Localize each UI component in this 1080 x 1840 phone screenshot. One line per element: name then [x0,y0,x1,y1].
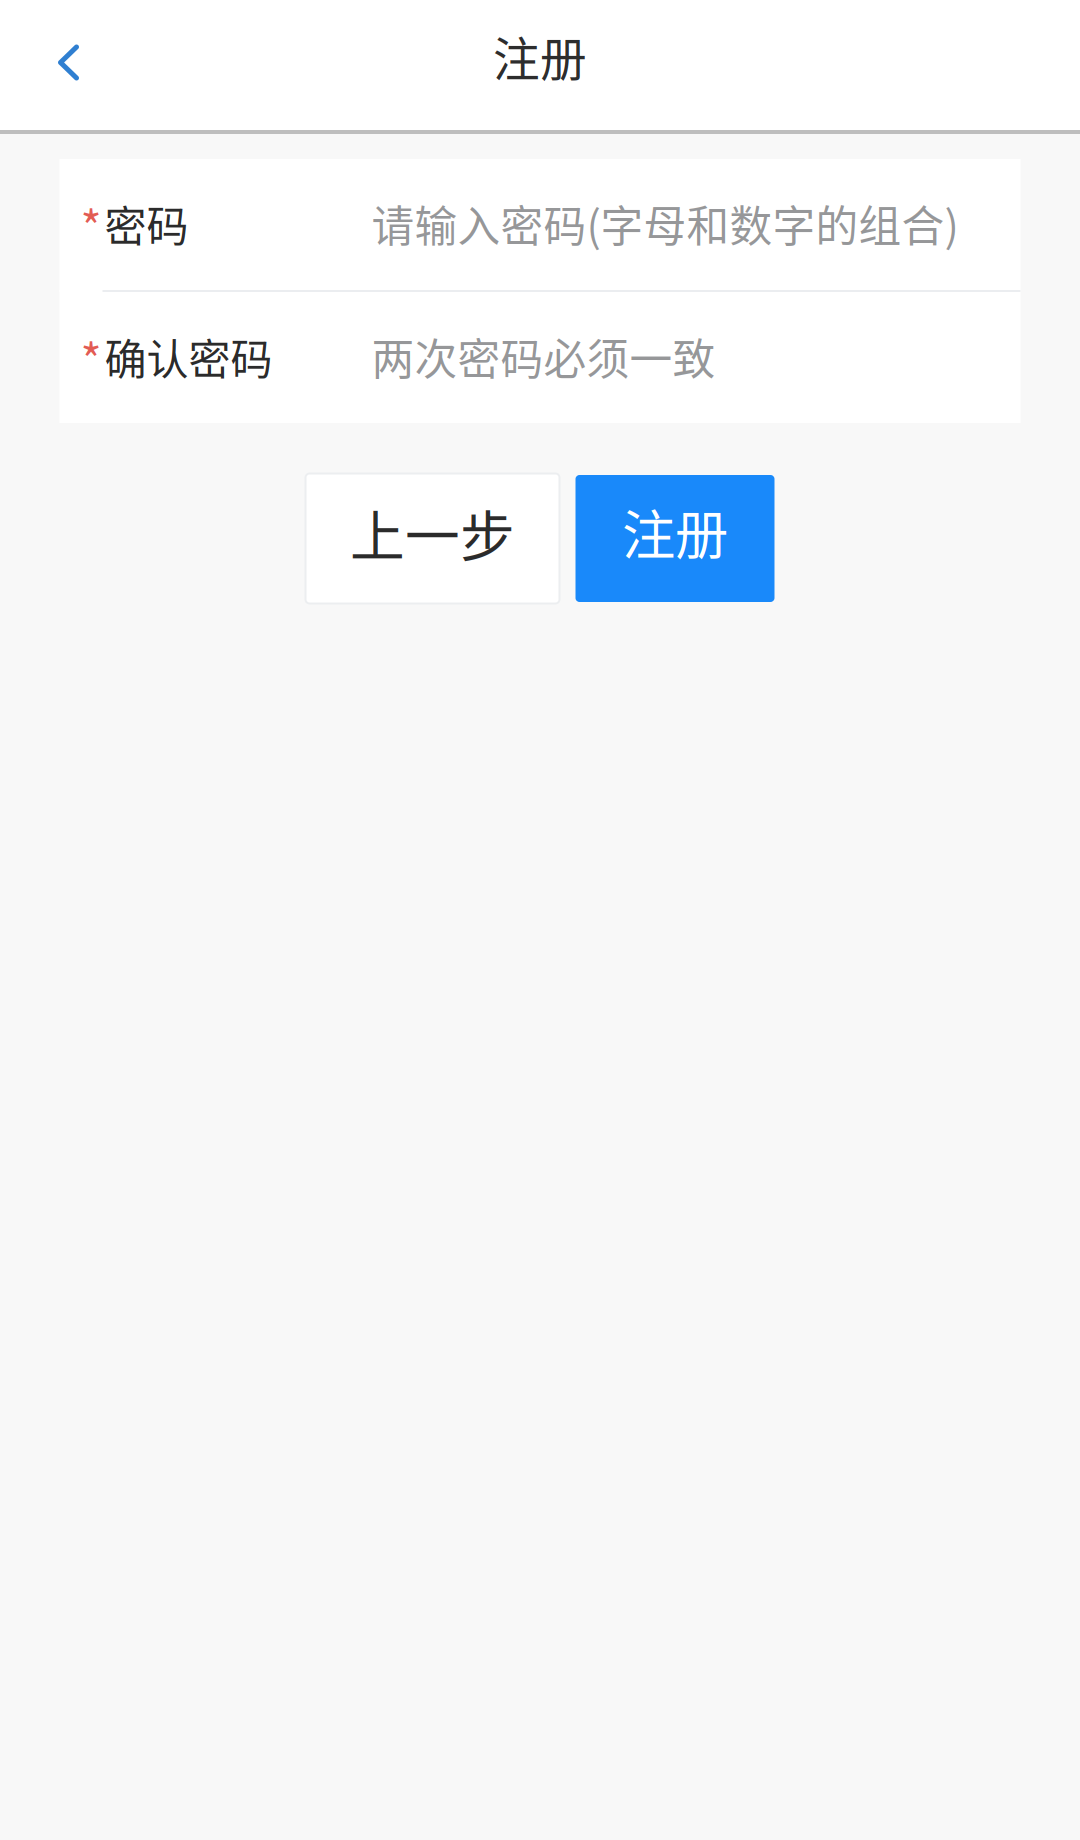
staticText: 确认密码 [104,326,272,387]
staticText: 请输入密码(字母和数字的组合) [371,193,958,254]
staticText: 注册 [493,22,587,90]
staticText: * [80,192,101,257]
button[interactable]: * [59,159,1020,290]
button[interactable]: * [59,292,1020,423]
staticText: 两次密码必须一致 [371,326,715,387]
button[interactable]: 上一步 [305,473,559,603]
button[interactable]: 注册 [575,475,774,602]
staticText: * [80,325,101,390]
staticText: 密码 [104,193,188,254]
button[interactable]: 返回 [0,0,140,125]
staticText: 注册 [622,493,728,570]
staticText: 上一步 [350,493,515,572]
